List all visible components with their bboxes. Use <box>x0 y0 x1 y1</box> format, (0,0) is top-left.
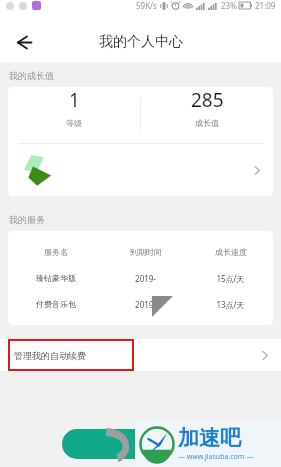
staticText: 管理我的自动续费 <box>14 350 86 361</box>
staticText: 2019- <box>135 273 156 284</box>
staticText: 23% <box>221 0 237 11</box>
staticText: 285 <box>191 87 224 113</box>
staticText: 成长值 <box>195 118 219 128</box>
staticText: 13点/天 <box>216 299 245 310</box>
staticText: 成长速度 <box>215 247 247 257</box>
staticText: 我的个人中心 <box>99 33 183 51</box>
staticText: — www.jiasuba.com — <box>178 452 254 462</box>
button[interactable] <box>8 144 273 196</box>
staticText: 服务名 <box>44 247 68 257</box>
staticText: 2019- <box>135 299 156 310</box>
button[interactable]: 管理我的自动续费 <box>0 339 281 371</box>
button[interactable] <box>62 429 162 459</box>
button[interactable]: Back <box>6 25 40 59</box>
staticText: 21:09 <box>255 0 276 11</box>
staticText: 我的服务 <box>9 214 45 225</box>
staticText: 臻钻豪华版 <box>36 273 76 283</box>
staticText: 加速吧 <box>178 425 241 451</box>
staticText: 付费音乐包 <box>36 299 76 309</box>
staticText: 我的成长值 <box>9 70 54 81</box>
staticText: 到期时间 <box>130 247 162 257</box>
staticText: 等级 <box>66 118 82 128</box>
staticText: 1 <box>69 87 80 113</box>
staticText: 15点/天 <box>216 273 245 284</box>
staticText: 59K/s <box>136 0 157 11</box>
